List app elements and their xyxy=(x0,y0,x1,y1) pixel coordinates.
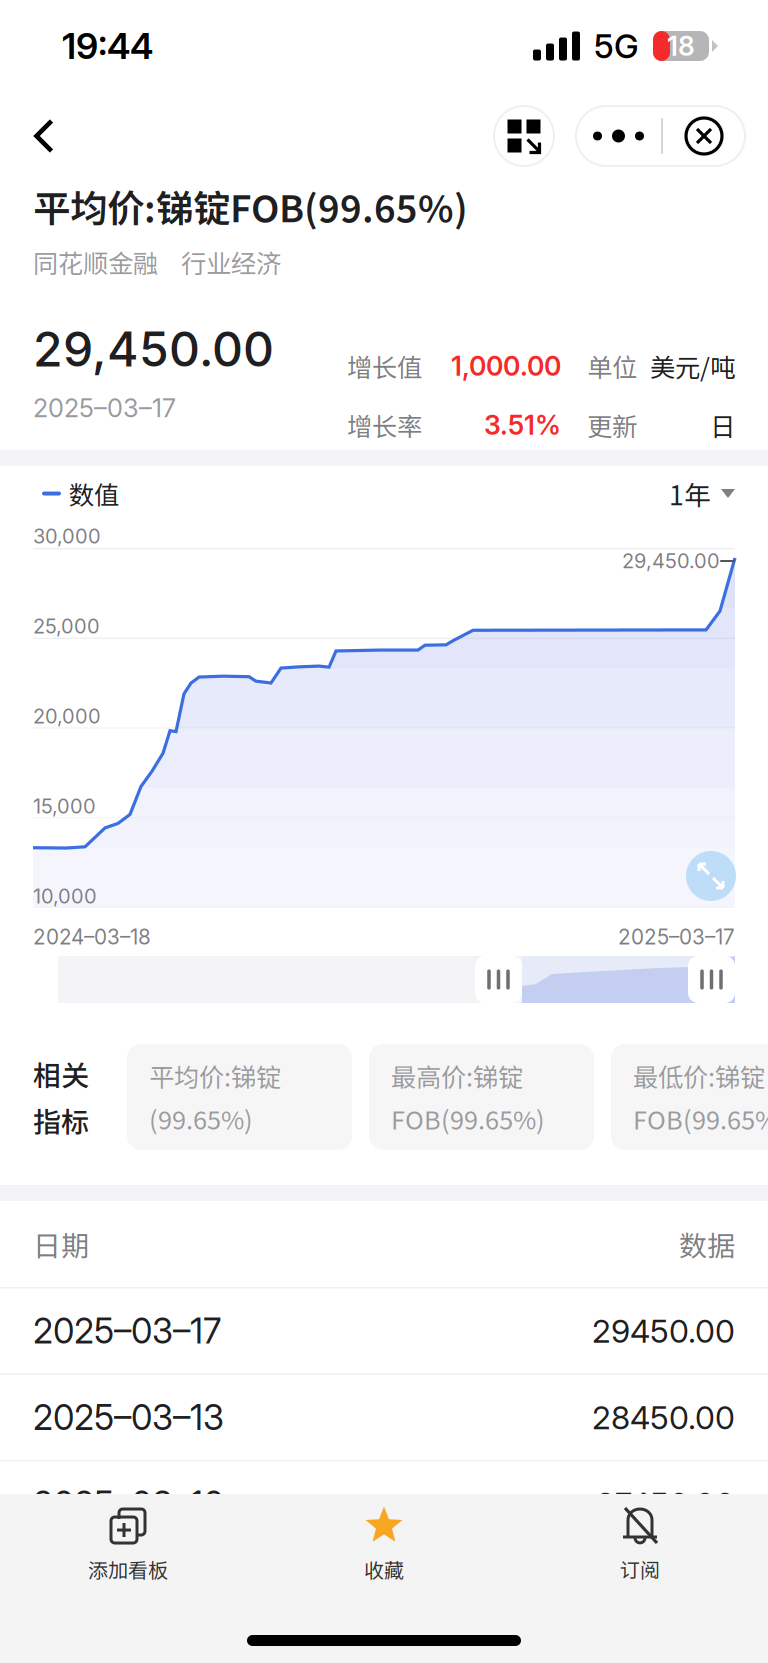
staticText: 日期 xyxy=(33,1224,89,1264)
staticText: 2025–03–13 xyxy=(33,1396,224,1438)
staticText: 5G xyxy=(594,26,639,66)
staticText: 相关 xyxy=(33,1053,89,1094)
staticText: FOB(99.65%) xyxy=(391,1100,545,1137)
staticText: 收藏 xyxy=(364,1554,404,1583)
staticText: 单位 xyxy=(587,348,637,384)
staticText: 29,450.00 xyxy=(33,320,274,378)
staticText: 日 xyxy=(710,407,735,443)
staticText: 添加看板 xyxy=(88,1554,168,1583)
staticText: 10,000 xyxy=(33,884,97,908)
button[interactable]: 收藏 xyxy=(256,1506,512,1610)
staticText: 27450.00 xyxy=(596,1485,735,1523)
staticText: 2024–03–18 xyxy=(33,924,151,949)
staticText: 增长值 xyxy=(347,348,422,384)
staticText: 28450.00 xyxy=(592,1398,735,1437)
button[interactable]: More options and close xyxy=(576,106,745,166)
staticText: 数值 xyxy=(69,475,119,512)
staticText: 30,000 xyxy=(33,524,101,548)
button[interactable]: Mini program panel xyxy=(494,106,554,166)
staticText: 3.51% xyxy=(484,409,561,441)
staticText: 数据 xyxy=(679,1224,735,1264)
button[interactable]: 订阅 xyxy=(512,1506,768,1610)
staticText: 20,000 xyxy=(33,704,101,728)
button[interactable]: 最低价:锑锭 xyxy=(611,1044,768,1150)
staticText: FOB(99.65%) xyxy=(633,1100,768,1137)
staticText: 最低价:锑锭 xyxy=(633,1057,765,1094)
staticText: 行业经济 xyxy=(181,244,281,280)
staticText: 2025–03–17 xyxy=(33,393,176,423)
staticText: (99.65%) xyxy=(149,1100,253,1137)
staticText: 更新 xyxy=(587,407,637,443)
staticText: 订阅 xyxy=(620,1554,660,1583)
staticText: 增长率 xyxy=(347,407,422,443)
staticText: 2025–03–10 xyxy=(33,1483,224,1525)
staticText: 29,450.00 xyxy=(622,549,720,573)
staticText: 平均价:锑锭FOB(99.65%) xyxy=(33,179,468,233)
staticText: 1,000.00 xyxy=(451,350,561,382)
staticText: 18 xyxy=(667,30,695,62)
staticText: 2025–03–17 xyxy=(33,1310,221,1352)
button[interactable]: 平均价:锑锭 xyxy=(127,1044,352,1150)
staticText: 美元/吨 xyxy=(650,348,735,384)
button[interactable]: 添加看板 xyxy=(0,1506,256,1610)
button[interactable]: 2025–03–10 xyxy=(0,1461,768,1546)
button[interactable]: Expand chart xyxy=(686,851,736,901)
staticText: 2025–03–17 xyxy=(618,924,735,949)
staticText: 同花顺金融 xyxy=(33,244,158,280)
button[interactable]: 2025–03–13 xyxy=(0,1375,768,1460)
button[interactable]: 1年 xyxy=(669,474,735,513)
staticText: 最高价:锑锭 xyxy=(391,1057,523,1094)
staticText: 19:44 xyxy=(62,24,153,68)
staticText: 平均价:锑锭 xyxy=(149,1057,281,1094)
staticText: 25,000 xyxy=(33,614,100,638)
staticText: 指标 xyxy=(33,1100,89,1140)
button[interactable]: Back xyxy=(7,96,81,176)
button[interactable]: 2025–03–17 xyxy=(0,1288,768,1373)
button[interactable]: 最高价:锑锭 xyxy=(369,1044,594,1150)
staticText: 15,000 xyxy=(33,794,96,818)
staticText: 1年 xyxy=(669,474,711,513)
staticText: 29450.00 xyxy=(592,1312,735,1350)
